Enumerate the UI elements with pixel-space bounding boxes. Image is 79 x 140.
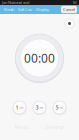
button[interactable]: Booth [2, 7, 16, 12]
staticText: 3 [35, 104, 38, 111]
button[interactable]: Start timer [64, 18, 75, 29]
button[interactable]: 1 [12, 100, 26, 115]
staticText: m [19, 105, 23, 110]
button[interactable]: Cancel [61, 6, 77, 13]
button[interactable]: Settings [44, 124, 66, 130]
button[interactable]: Display [34, 7, 51, 12]
staticText: m [39, 105, 43, 110]
staticText: Settings [45, 123, 65, 131]
staticText: 1 [15, 104, 18, 111]
button[interactable]: 5 [52, 100, 66, 115]
staticText: 5 [55, 104, 58, 111]
staticText: Soft Cas [18, 7, 32, 12]
button[interactable]: Soft Cas [16, 7, 34, 12]
button[interactable]: Reset [12, 124, 30, 130]
staticText: Reset [14, 123, 28, 131]
staticText: Display [36, 7, 49, 12]
staticText: M [73, 0, 77, 5]
button[interactable]: 3 [32, 100, 46, 115]
staticText: Booth [4, 7, 14, 12]
staticText: Jan National and [2, 0, 29, 5]
staticText: Cancel [63, 7, 75, 12]
staticText: 00:00 [24, 50, 55, 66]
staticText: m [59, 105, 63, 110]
